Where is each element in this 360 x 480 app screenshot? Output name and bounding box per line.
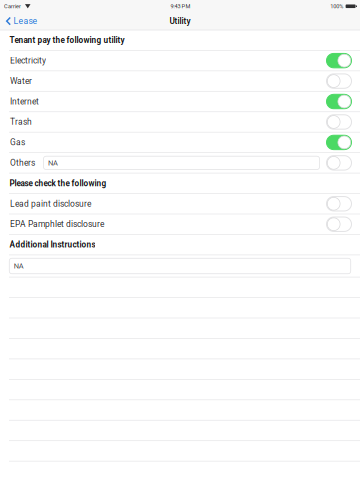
staticText: Trash xyxy=(10,117,32,127)
button[interactable]: Lead paint disclosure xyxy=(0,194,360,214)
button[interactable]: Water xyxy=(0,71,360,91)
staticText: Water xyxy=(10,76,32,86)
button[interactable]: Electricity xyxy=(0,51,360,71)
staticText: Lead paint disclosure xyxy=(10,199,91,209)
staticText: NA xyxy=(48,158,58,167)
staticText: Please check the following xyxy=(9,178,106,188)
staticText: Electricity xyxy=(10,56,46,66)
staticText: Additional Instructions xyxy=(9,240,95,249)
button[interactable]: Internet xyxy=(0,92,360,111)
staticText: Internet xyxy=(10,97,39,106)
staticText: 9:43 PM xyxy=(170,3,190,10)
button[interactable]: Others xyxy=(0,153,360,173)
staticText: Lease xyxy=(14,16,38,26)
staticText: EPA Pamphlet disclosure xyxy=(10,219,104,229)
button[interactable]: Gas xyxy=(0,133,360,152)
staticText: Tenant pay the following utility xyxy=(9,35,124,45)
staticText: Utility xyxy=(169,16,190,26)
button[interactable]: EPA Pamphlet disclosure xyxy=(0,214,360,234)
button[interactable]: Lease xyxy=(0,14,38,28)
staticText: Gas xyxy=(10,137,25,147)
button[interactable]: NA xyxy=(0,255,360,277)
staticText: Others xyxy=(10,158,35,168)
staticText: NA xyxy=(14,262,24,270)
staticText: 100% xyxy=(330,3,343,10)
button[interactable]: Trash xyxy=(0,112,360,132)
staticText: Carrier xyxy=(4,3,21,10)
